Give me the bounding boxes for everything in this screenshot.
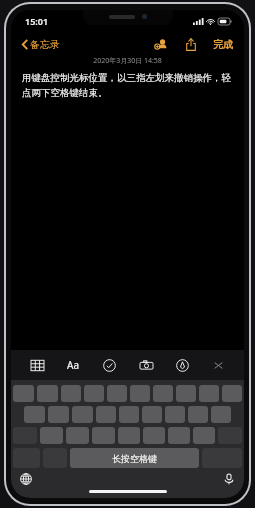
button[interactable]: Key bbox=[199, 385, 219, 402]
button[interactable]: Key bbox=[72, 406, 93, 423]
button[interactable]: Key bbox=[40, 427, 63, 444]
button[interactable]: Aa bbox=[61, 352, 85, 378]
button[interactable]: Key bbox=[143, 427, 165, 444]
button[interactable]: Key bbox=[165, 406, 185, 423]
button[interactable]: Key bbox=[176, 385, 196, 402]
button[interactable]: Key bbox=[193, 427, 215, 444]
button[interactable]: Key bbox=[92, 427, 115, 444]
button[interactable]: Key bbox=[222, 385, 242, 402]
button[interactable]: Key bbox=[168, 427, 190, 444]
staticText: 长按空格键 bbox=[112, 453, 157, 464]
button[interactable]: Key bbox=[211, 406, 231, 423]
button[interactable]: Key bbox=[61, 385, 81, 402]
button[interactable]: Key bbox=[37, 385, 58, 402]
button[interactable]: Checklist bbox=[97, 352, 121, 378]
button[interactable]: Add people bbox=[151, 34, 171, 54]
button[interactable]: Key bbox=[48, 406, 69, 423]
button[interactable]: Change keyboard bbox=[17, 470, 35, 488]
staticText: Aa bbox=[67, 358, 79, 372]
button[interactable]: Share bbox=[181, 34, 201, 54]
button[interactable]: 长按空格键 bbox=[70, 448, 199, 468]
button[interactable]: Key bbox=[188, 406, 208, 423]
button[interactable]: Key bbox=[118, 427, 140, 444]
button[interactable]: Key bbox=[66, 427, 89, 444]
button[interactable]: Key bbox=[13, 385, 34, 402]
staticText: 用键盘控制光标位置，以三指左划来撤销操作，轻 点两下空格键结束。 bbox=[22, 72, 231, 99]
button[interactable]: Key bbox=[130, 385, 150, 402]
button[interactable]: Key bbox=[153, 385, 173, 402]
button[interactable]: Key bbox=[24, 406, 45, 423]
staticText: 完成 bbox=[213, 38, 233, 51]
button[interactable]: Markup bbox=[170, 352, 194, 378]
button[interactable]: Dictation bbox=[220, 470, 238, 488]
staticText: 15:01 bbox=[25, 15, 49, 27]
button[interactable]: Key bbox=[119, 406, 139, 423]
button[interactable]: Key bbox=[96, 406, 116, 423]
button[interactable]: Key bbox=[107, 385, 127, 402]
button[interactable]: Key bbox=[142, 406, 162, 423]
button[interactable]: 备忘录 bbox=[20, 36, 62, 53]
button[interactable]: 完成 bbox=[211, 36, 235, 53]
button[interactable]: Table bbox=[25, 352, 49, 378]
button[interactable]: Key bbox=[84, 385, 104, 402]
staticText: 2020年3月30日 14:58 bbox=[11, 56, 244, 66]
button[interactable]: Camera bbox=[134, 352, 158, 378]
staticText: 备忘录 bbox=[30, 38, 60, 51]
button[interactable]: Close keyboard bbox=[206, 352, 230, 378]
